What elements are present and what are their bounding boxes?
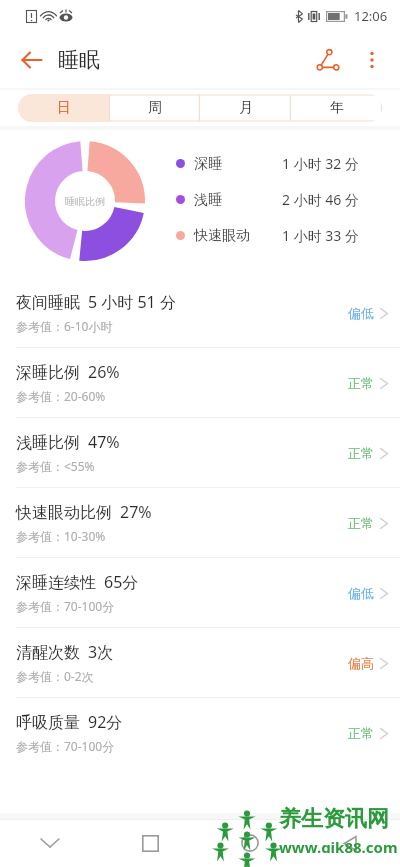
staticText: 正常 — [348, 515, 374, 531]
button[interactable]: 快速眼动比例 — [0, 488, 400, 557]
button[interactable]: 夜间睡眠 — [0, 278, 400, 347]
button[interactable]: Home — [200, 819, 300, 867]
staticText: 偏低 — [348, 305, 374, 321]
button[interactable]: 周 — [109, 94, 200, 122]
staticText: 65分 — [104, 571, 139, 593]
staticText: 参考值：<55% — [16, 458, 95, 474]
button[interactable]: Back navigation — [300, 819, 400, 867]
staticText: 快速眼动比例 — [16, 503, 112, 523]
staticText: 养生资讯网 — [279, 805, 389, 833]
staticText: 5 小时 51 分 — [88, 291, 176, 313]
staticText: 2 小时 46 分 — [282, 190, 359, 209]
button[interactable]: Back — [0, 819, 100, 867]
staticText: 1 小时 33 分 — [282, 226, 359, 245]
staticText: 浅睡比例 — [16, 433, 80, 453]
staticText: 参考值：70-100分 — [16, 738, 115, 754]
staticText: 12:06 — [354, 7, 388, 25]
button[interactable]: Share — [306, 38, 350, 82]
staticText: 1 小时 32 分 — [282, 154, 359, 173]
staticText: 呼吸质量 — [16, 713, 80, 733]
staticText: 快速眼动 — [194, 227, 250, 245]
staticText: 周 — [148, 99, 162, 117]
button[interactable]: Recents — [100, 819, 200, 867]
button[interactable]: 呼吸质量 — [0, 698, 400, 767]
staticText: 27% — [120, 501, 152, 523]
button[interactable]: 浅睡比例 — [0, 418, 400, 487]
staticText: 正常 — [348, 375, 374, 391]
staticText: 睡眠 — [58, 47, 100, 73]
button[interactable]: 清醒次数 — [0, 628, 400, 697]
button[interactable]: 年 — [291, 94, 382, 122]
button[interactable]: Back — [10, 38, 54, 82]
staticText: 3次 — [88, 641, 114, 663]
button[interactable]: 月 — [200, 94, 291, 122]
staticText: 参考值：20-60% — [16, 388, 106, 404]
staticText: 正常 — [348, 725, 374, 741]
staticText: 深睡 — [194, 155, 222, 173]
staticText: 深睡比例 — [16, 363, 80, 383]
staticText: 睡眠比例 — [65, 195, 105, 208]
staticText: 参考值：6-10小时 — [16, 318, 113, 334]
staticText: 参考值：70-100分 — [16, 598, 115, 614]
staticText: 浅睡 — [194, 191, 222, 209]
staticText: 月 — [239, 99, 253, 117]
staticText: 日 — [57, 99, 71, 117]
staticText: www.gjk88.com — [279, 837, 398, 853]
button[interactable]: 日 — [18, 94, 109, 122]
button[interactable]: 深睡比例 — [0, 348, 400, 417]
staticText: 夜间睡眠 — [16, 293, 80, 313]
staticText: 92分 — [88, 711, 123, 733]
button[interactable]: 深睡连续性 — [0, 558, 400, 627]
staticText: 参考值：0-2次 — [16, 668, 94, 684]
staticText: 偏低 — [348, 585, 374, 601]
staticText: 深睡连续性 — [16, 573, 96, 593]
staticText: 清醒次数 — [16, 643, 80, 663]
staticText: 参考值：10-30% — [16, 528, 106, 544]
staticText: 26% — [88, 361, 120, 383]
staticText: 年 — [330, 99, 344, 117]
staticText: 47% — [88, 431, 120, 453]
staticText: 正常 — [348, 445, 374, 461]
button[interactable]: More options — [350, 38, 394, 82]
staticText: 偏高 — [348, 655, 374, 671]
